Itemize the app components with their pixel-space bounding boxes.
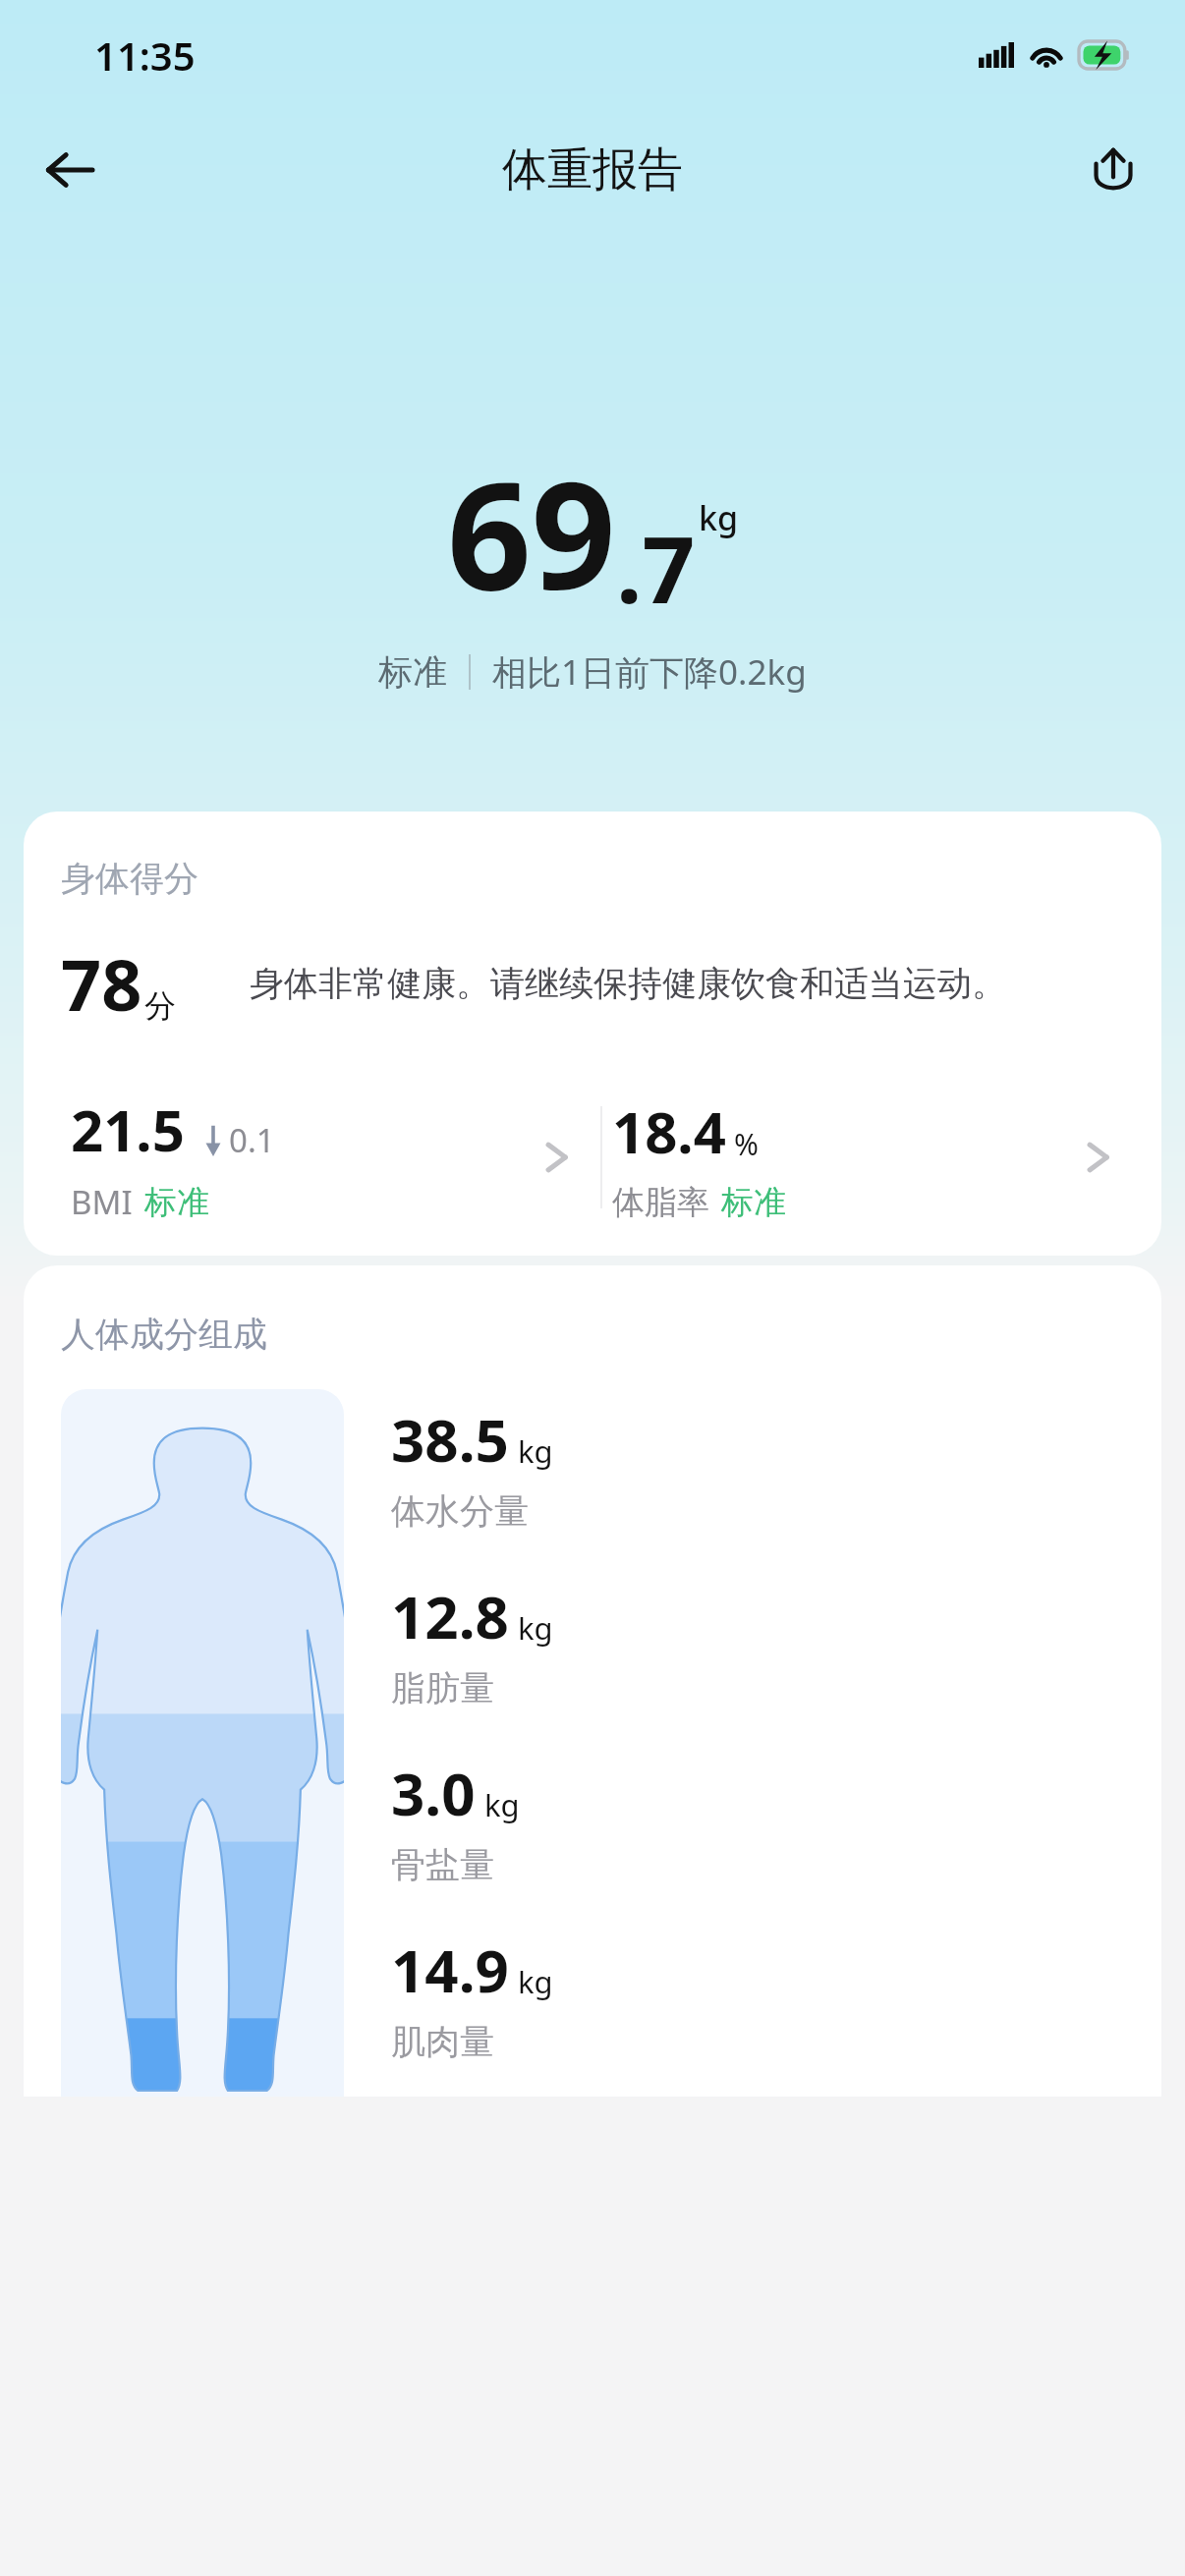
staticText: 69 [447, 432, 616, 633]
staticText: 骨盐量 [391, 1843, 494, 1886]
staticText: kg [518, 1607, 553, 1649]
button[interactable]: Share [1069, 126, 1157, 214]
staticText: % [734, 1124, 759, 1164]
staticText: 脂肪量 [391, 1666, 494, 1709]
staticText: 相比1日前下降0.2kg [492, 648, 807, 696]
staticText: kg [484, 1784, 520, 1825]
staticText: 人体成分组成 [61, 1313, 267, 1356]
staticText: .7 [616, 505, 696, 631]
staticText: 78 [61, 935, 142, 1032]
button[interactable]: 18.4 [602, 1089, 1142, 1226]
staticText: 18.4 [612, 1092, 726, 1170]
button[interactable]: Back [26, 126, 114, 214]
staticText: 体水分量 [391, 1489, 529, 1533]
staticText: 38.5 [391, 1399, 509, 1480]
staticText: 肌肉量 [391, 2020, 494, 2063]
staticText: 体脂率 [612, 1182, 709, 1223]
staticText: kg [518, 1961, 553, 2002]
staticText: 分 [144, 986, 176, 1026]
staticText: 0.1 [229, 1118, 275, 1162]
staticText: 14.9 [391, 1930, 509, 2010]
staticText: 体重报告 [502, 141, 683, 198]
staticText: BMI [71, 1180, 133, 1224]
staticText: 11:35 [94, 28, 196, 82]
staticText: 身体得分 [61, 857, 198, 900]
button[interactable]: 21.5 [61, 1089, 600, 1226]
staticText: 21.5 [71, 1091, 185, 1168]
staticText: 12.8 [391, 1576, 509, 1656]
staticText: 3.0 [391, 1753, 476, 1833]
staticText: 标准 [378, 650, 447, 694]
staticText: 标准 [144, 1182, 209, 1223]
staticText: kg [699, 495, 739, 540]
staticText: kg [518, 1430, 553, 1472]
staticText: 身体非常健康。请继续保持健康饮食和适当运动。 [250, 962, 1122, 1005]
staticText: 标准 [721, 1182, 786, 1223]
